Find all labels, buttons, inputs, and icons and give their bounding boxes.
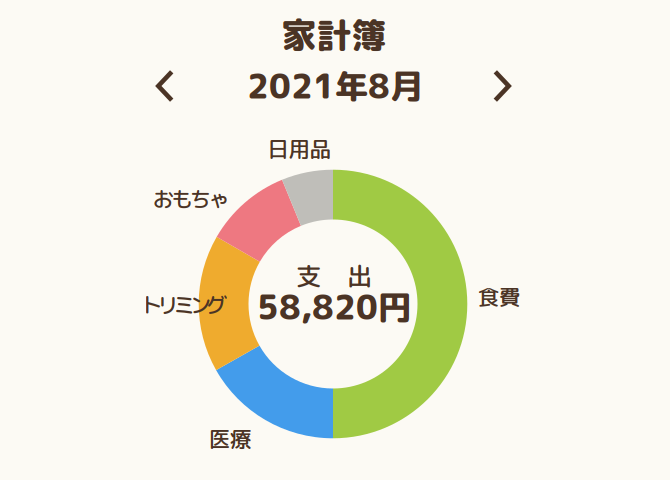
staticText: 家計簿	[281, 11, 386, 59]
button[interactable]: おもちゃ	[217, 180, 301, 262]
button[interactable]: 前の月	[143, 56, 187, 115]
button[interactable]: トリミング	[199, 237, 260, 370]
staticText: 医療	[209, 424, 251, 454]
button[interactable]: 食費	[333, 170, 467, 438]
staticText: 日用品	[267, 134, 330, 164]
staticText: 食費	[478, 282, 520, 312]
button[interactable]: 日用品	[282, 170, 333, 226]
staticText: 2021年8月	[247, 63, 423, 109]
staticText: 支 出	[296, 258, 372, 294]
button[interactable]: 次の月	[480, 56, 524, 115]
button[interactable]: 医療	[216, 346, 333, 438]
staticText: おもちゃ	[153, 184, 229, 214]
staticText: 58,820円	[257, 284, 411, 330]
staticText: トリミング	[141, 290, 227, 320]
